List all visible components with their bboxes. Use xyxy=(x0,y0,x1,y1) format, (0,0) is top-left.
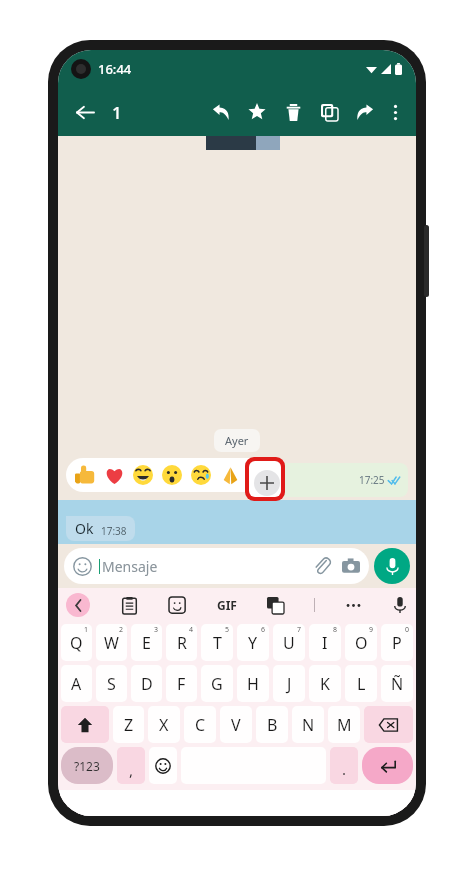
button[interactable]: K xyxy=(309,665,341,702)
button[interactable]: Clipboard xyxy=(121,597,138,614)
button[interactable]: , xyxy=(117,747,145,784)
button[interactable]: Surprised xyxy=(160,463,184,487)
staticText: E xyxy=(142,632,151,654)
button[interactable]: Mensaje xyxy=(64,548,369,584)
button[interactable]: D xyxy=(131,665,162,702)
staticText: A xyxy=(71,673,82,695)
staticText: N xyxy=(302,714,315,736)
staticText: O xyxy=(355,632,368,654)
staticText: F xyxy=(177,673,186,695)
button[interactable]: H xyxy=(237,665,269,702)
staticText: W xyxy=(104,632,119,654)
button[interactable]: Delete xyxy=(280,99,306,125)
button[interactable]: L xyxy=(345,665,377,702)
staticText: C xyxy=(195,714,206,736)
button[interactable]: S xyxy=(96,665,127,702)
button[interactable]: ?123 xyxy=(61,747,113,784)
button[interactable]: Backspace xyxy=(364,706,413,743)
staticText: Mensaje xyxy=(102,557,158,576)
staticText: G xyxy=(211,673,223,695)
button[interactable]: Reply xyxy=(208,99,234,125)
staticText: 1 xyxy=(84,625,89,635)
button[interactable]: I xyxy=(309,624,341,661)
staticText: Ñ xyxy=(391,673,404,695)
button[interactable]: More reactions xyxy=(247,462,273,488)
staticText: M xyxy=(337,714,352,736)
staticText: U xyxy=(283,632,295,654)
button[interactable]: Back xyxy=(68,95,102,129)
button[interactable]: Copy xyxy=(316,99,342,125)
staticText: 8 xyxy=(333,625,338,635)
staticText: Q xyxy=(70,632,83,654)
staticText: 0 xyxy=(405,625,410,635)
button[interactable]: R xyxy=(166,624,197,661)
staticText: P xyxy=(392,632,402,654)
staticText: 17:38 xyxy=(101,524,127,538)
staticText: R xyxy=(177,632,187,654)
staticText: H xyxy=(247,673,259,695)
button[interactable]: Shift xyxy=(61,706,109,743)
staticText: ?123 xyxy=(74,758,100,774)
staticText: D xyxy=(141,673,153,695)
button[interactable]: Y xyxy=(237,624,269,661)
button[interactable]: P xyxy=(381,624,413,661)
staticText: 5 xyxy=(225,625,230,635)
button[interactable]: Star xyxy=(244,99,270,125)
staticText: . xyxy=(342,759,347,779)
button[interactable]: Collapse xyxy=(66,593,90,617)
button[interactable]: G xyxy=(201,665,233,702)
button[interactable]: GIF xyxy=(217,597,237,613)
button[interactable]: J xyxy=(273,665,305,702)
staticText: 2 xyxy=(119,625,124,635)
button[interactable]: Emoji xyxy=(149,747,177,784)
staticText: I xyxy=(322,632,328,654)
staticText: B xyxy=(267,714,278,736)
staticText: Y xyxy=(248,632,258,654)
staticText: 3 xyxy=(154,625,159,635)
button[interactable]: Enter xyxy=(362,747,413,784)
button[interactable]: V xyxy=(220,706,252,743)
button[interactable]: C xyxy=(184,706,216,743)
staticText: Z xyxy=(124,714,134,736)
button[interactable]: Heart xyxy=(102,463,126,487)
button[interactable]: X xyxy=(148,706,180,743)
staticText: 16:44 xyxy=(98,60,132,78)
button[interactable]: M xyxy=(328,706,360,743)
button[interactable]: N xyxy=(292,706,324,743)
button[interactable]: Translate xyxy=(267,597,284,614)
button[interactable]: More options xyxy=(382,99,408,125)
button[interactable]: Thumbs up xyxy=(73,463,97,487)
staticText: X xyxy=(159,714,169,736)
other: Camera xyxy=(342,557,360,575)
button[interactable]: Q xyxy=(61,624,92,661)
staticText: , xyxy=(129,760,134,780)
staticText: V xyxy=(231,714,241,736)
button[interactable]: F xyxy=(166,665,197,702)
staticText: K xyxy=(320,673,330,695)
other: Attach xyxy=(313,557,331,575)
button[interactable]: Voice message xyxy=(374,548,410,584)
button[interactable]: Sad xyxy=(189,463,213,487)
button[interactable]: A xyxy=(61,665,92,702)
button[interactable]: Pray xyxy=(218,463,242,487)
staticText: T xyxy=(213,632,222,654)
button[interactable]: U xyxy=(273,624,305,661)
staticText: Ayer xyxy=(225,433,249,448)
button[interactable]: Laughing xyxy=(131,463,155,487)
button[interactable]: T xyxy=(201,624,233,661)
staticText: Ok xyxy=(75,519,94,538)
staticText: 4 xyxy=(189,625,194,635)
button[interactable]: E xyxy=(131,624,162,661)
button[interactable]: . xyxy=(330,747,358,784)
button[interactable]: O xyxy=(345,624,377,661)
button[interactable]: Voice input xyxy=(392,597,408,613)
button[interactable]: Forward xyxy=(352,99,378,125)
button[interactable]: W xyxy=(96,624,127,661)
button[interactable]: Ñ xyxy=(381,665,413,702)
button[interactable]: Z xyxy=(113,706,144,743)
staticText: 17:25 xyxy=(359,473,385,487)
button[interactable]: B xyxy=(256,706,288,743)
button[interactable]: More xyxy=(345,597,362,614)
button[interactable]: Stickers xyxy=(169,597,186,614)
